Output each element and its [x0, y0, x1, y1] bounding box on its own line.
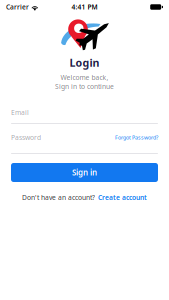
staticText: 4:41 PM	[71, 3, 97, 11]
button[interactable]: Create account	[98, 193, 147, 202]
staticText: Create account	[98, 193, 147, 202]
staticText: Don't have an account?	[22, 193, 95, 202]
staticText: Login	[69, 55, 99, 70]
staticText: Sign in to continue	[55, 82, 114, 91]
staticText: Password	[11, 133, 41, 142]
staticText: Welcome back,	[60, 73, 108, 82]
button[interactable]: Sign in	[11, 163, 158, 182]
staticText: Forgot Password?	[115, 134, 158, 141]
staticText: Carrier	[6, 3, 29, 11]
button[interactable]: Forgot Password?	[115, 134, 158, 141]
staticText: Email	[11, 108, 29, 117]
staticText: Sign in	[72, 167, 97, 178]
